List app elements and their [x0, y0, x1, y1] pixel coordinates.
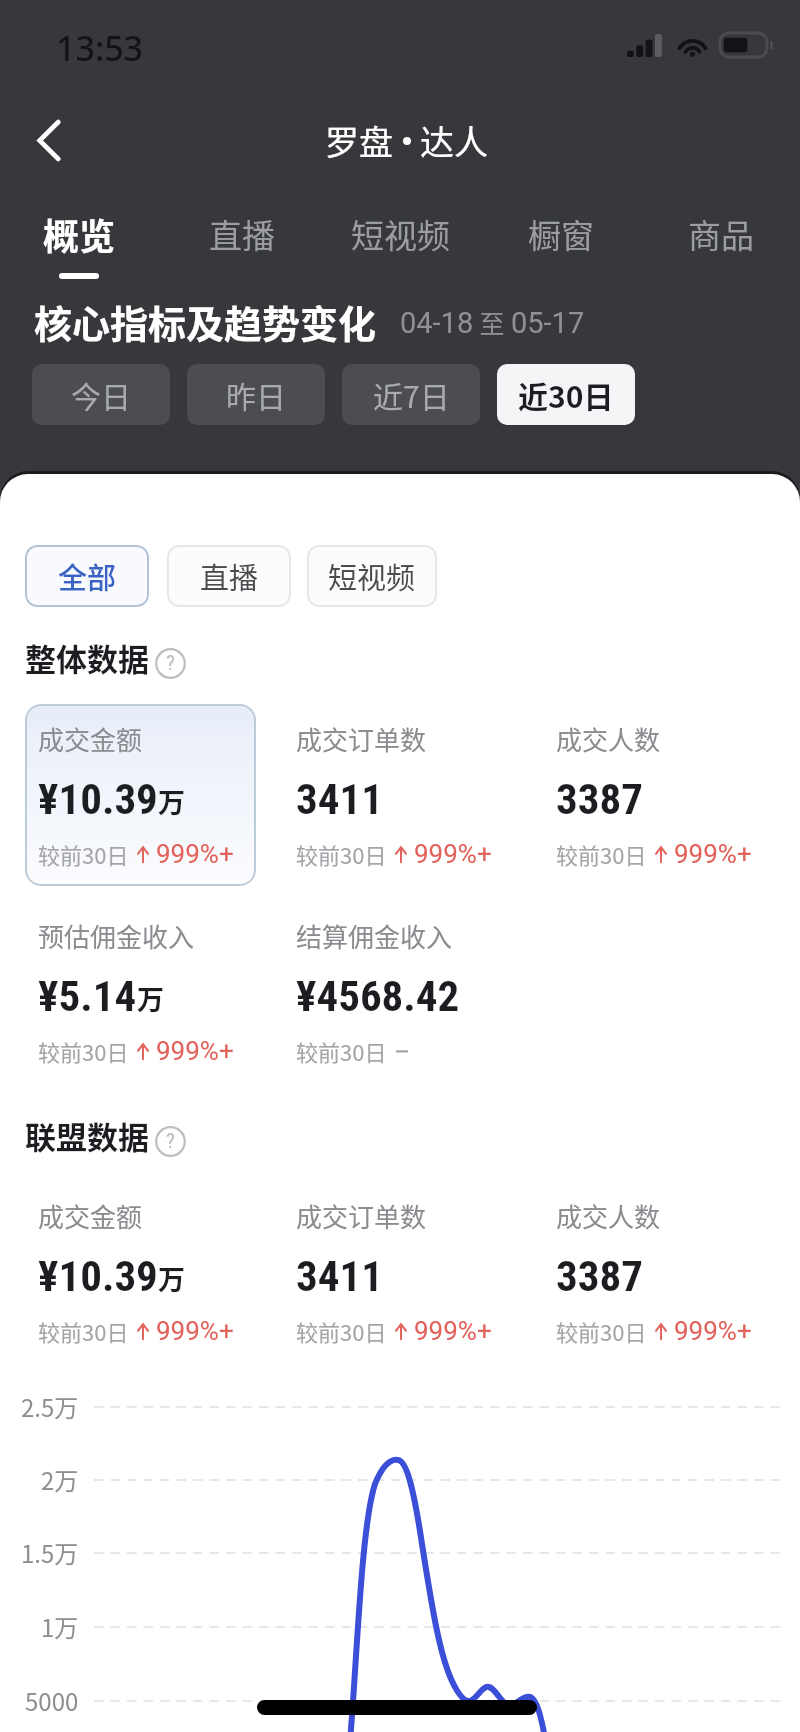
staticText: 较前30日 — [296, 838, 387, 870]
staticText: 较前30日 — [296, 1315, 387, 1347]
button[interactable]: 短视频 — [307, 545, 437, 607]
staticText: 橱窗 — [528, 210, 594, 258]
button[interactable]: 昨日 — [187, 364, 325, 425]
staticText: 万 — [158, 782, 185, 821]
button[interactable]: 成交订单数 — [296, 1197, 546, 1347]
staticText: 万 — [158, 1259, 185, 1298]
button[interactable]: 联盟数据 — [25, 1113, 186, 1158]
staticText: 概览 — [43, 208, 116, 260]
staticText: 结算佣金收入 — [296, 917, 453, 955]
staticText: 3411 — [296, 1251, 383, 1301]
staticText: 较前30日 — [296, 1035, 387, 1067]
staticText: 成交人数 — [556, 1197, 661, 1235]
staticText: ¥10.39 — [38, 774, 158, 824]
staticText: 999%+ — [674, 1316, 752, 1346]
staticText: 直播 — [209, 210, 275, 258]
staticText: 5000 — [25, 1683, 79, 1718]
button[interactable]: 成交金额 — [38, 1197, 288, 1347]
staticText: 达人 — [420, 116, 488, 165]
staticText: 成交金额 — [38, 720, 143, 758]
staticText: 成交订单数 — [296, 1197, 427, 1235]
staticText: 1.5万 — [21, 1535, 79, 1570]
staticText: 成交人数 — [556, 720, 661, 758]
staticText: 3387 — [556, 1251, 643, 1301]
staticText: 成交金额 — [38, 1197, 143, 1235]
staticText: 999%+ — [414, 1316, 492, 1346]
button[interactable]: 直播 — [191, 198, 293, 270]
staticText: 999%+ — [414, 839, 492, 869]
staticText: 全部 — [58, 555, 117, 597]
staticText: 04-18 — [400, 306, 474, 340]
button[interactable]: 成交人数 — [556, 1197, 800, 1347]
staticText: ? — [166, 1129, 175, 1154]
staticText: 2万 — [41, 1462, 79, 1497]
staticText: 昨日 — [226, 373, 286, 416]
staticText: ? — [166, 651, 175, 676]
staticText: 万 — [137, 979, 164, 1018]
button[interactable]: 概览 — [28, 198, 130, 270]
staticText: 较前30日 — [38, 1035, 129, 1067]
staticText: 今日 — [71, 373, 131, 416]
button[interactable]: 近7日 — [342, 364, 480, 425]
button[interactable]: 整体数据 — [25, 635, 186, 680]
staticText: 999%+ — [156, 839, 234, 869]
button[interactable]: 今日 — [32, 364, 170, 425]
staticText: 直播 — [200, 555, 259, 597]
staticText: ¥4568.42 — [296, 971, 460, 1021]
button[interactable]: 预估佣金收入 — [38, 917, 288, 1067]
button[interactable]: 结算佣金收入 — [296, 917, 546, 1067]
staticText: 1万 — [41, 1609, 79, 1644]
button[interactable] — [25, 704, 256, 886]
button[interactable]: 成交人数 — [556, 720, 800, 870]
staticText: 3387 — [556, 774, 643, 824]
staticText: 短视频 — [351, 210, 450, 258]
staticText: 成交订单数 — [296, 720, 427, 758]
staticText: 3411 — [296, 774, 383, 824]
staticText: 至 — [474, 304, 511, 340]
staticText: 罗盘 — [325, 116, 393, 165]
staticText: 999%+ — [156, 1316, 234, 1346]
button[interactable]: Back — [18, 109, 80, 171]
staticText: 较前30日 — [556, 838, 647, 870]
staticText: 999%+ — [156, 1036, 234, 1066]
button[interactable]: 近30日 — [497, 364, 635, 425]
staticText: 05-17 — [511, 306, 585, 340]
button[interactable]: 成交订单数 — [296, 720, 546, 870]
button[interactable]: 商品 — [670, 198, 772, 270]
staticText: 较前30日 — [556, 1315, 647, 1347]
staticText: 预估佣金收入 — [38, 917, 195, 955]
staticText: 999%+ — [674, 839, 752, 869]
staticText: 整体数据 — [25, 635, 149, 680]
staticText: 较前30日 — [38, 1315, 129, 1347]
staticText: 13:53 — [56, 25, 144, 71]
staticText: 联盟数据 — [25, 1113, 149, 1158]
staticText: 近7日 — [373, 373, 450, 416]
button[interactable]: 短视频 — [332, 198, 468, 270]
button[interactable]: 橱窗 — [510, 198, 612, 270]
button[interactable]: 全部 — [25, 545, 149, 607]
staticText: 核心指标及趋势变化 — [34, 294, 377, 349]
staticText: 2.5万 — [21, 1389, 79, 1424]
staticText: ¥5.14 — [38, 971, 137, 1021]
button[interactable]: 直播 — [167, 545, 291, 607]
staticText: 近30日 — [518, 373, 614, 416]
staticText: 短视频 — [328, 555, 416, 597]
staticText: ¥10.39 — [38, 1251, 158, 1301]
staticText: 较前30日 — [38, 838, 129, 870]
button[interactable]: 成交金额 — [38, 720, 288, 870]
staticText: 商品 — [688, 210, 754, 258]
